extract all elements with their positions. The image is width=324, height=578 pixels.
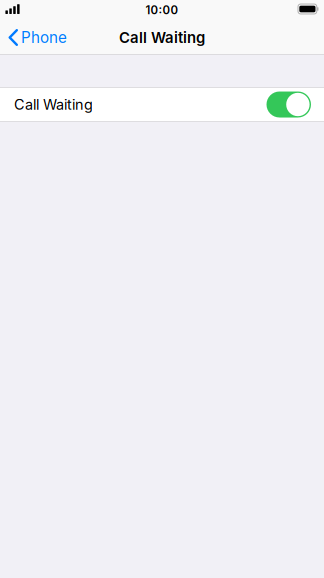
staticText: Call Waiting: [119, 28, 205, 46]
button[interactable]: Phone: [0, 20, 75, 55]
staticText: Phone: [21, 28, 67, 47]
button[interactable]: Call Waiting: [0, 87, 324, 122]
staticText: Call Waiting: [14, 96, 93, 113]
staticText: 10:00: [145, 3, 178, 17]
